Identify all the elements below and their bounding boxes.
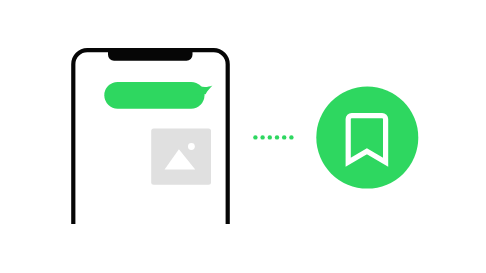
button[interactable]: Save to bookmarks bbox=[316, 87, 418, 189]
button[interactable]: Message preview bbox=[71, 48, 230, 226]
